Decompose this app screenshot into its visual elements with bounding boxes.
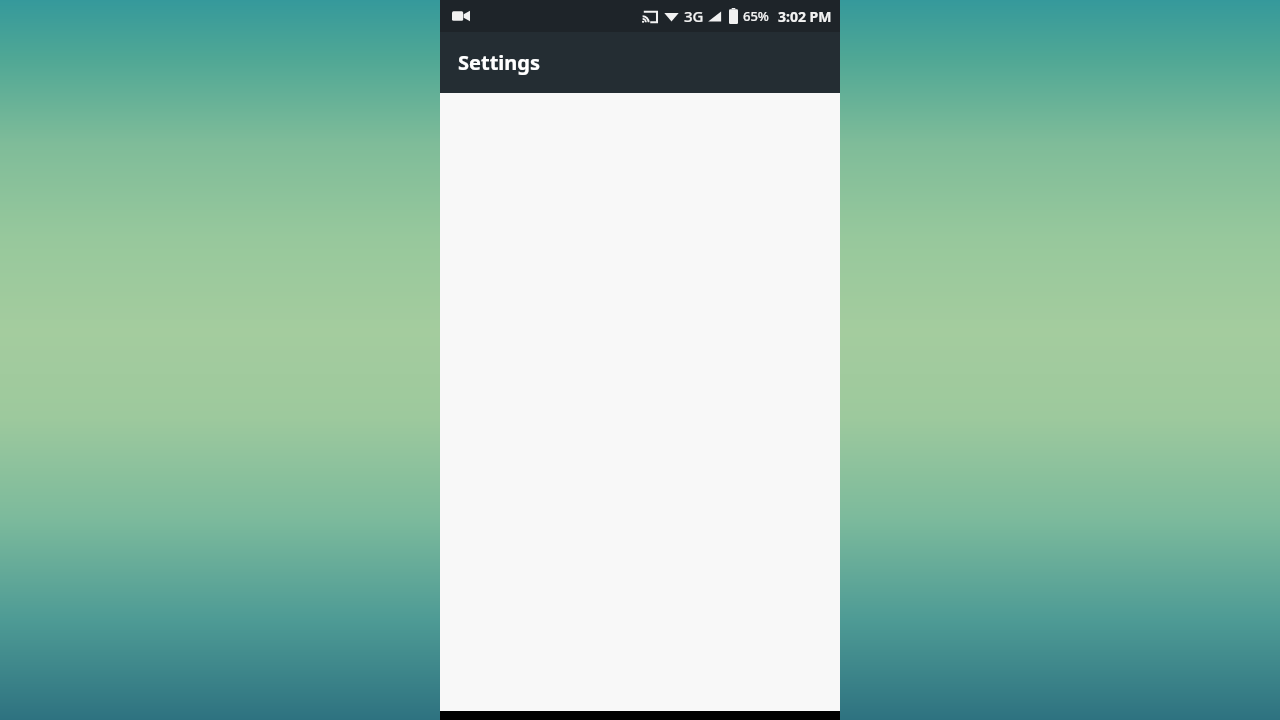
staticText: 65% [743,7,769,25]
other: Screen recording [450,5,472,27]
staticText: Settings [458,49,540,76]
staticText: 3:02 PM [778,7,832,26]
staticText: 3G [684,6,704,26]
